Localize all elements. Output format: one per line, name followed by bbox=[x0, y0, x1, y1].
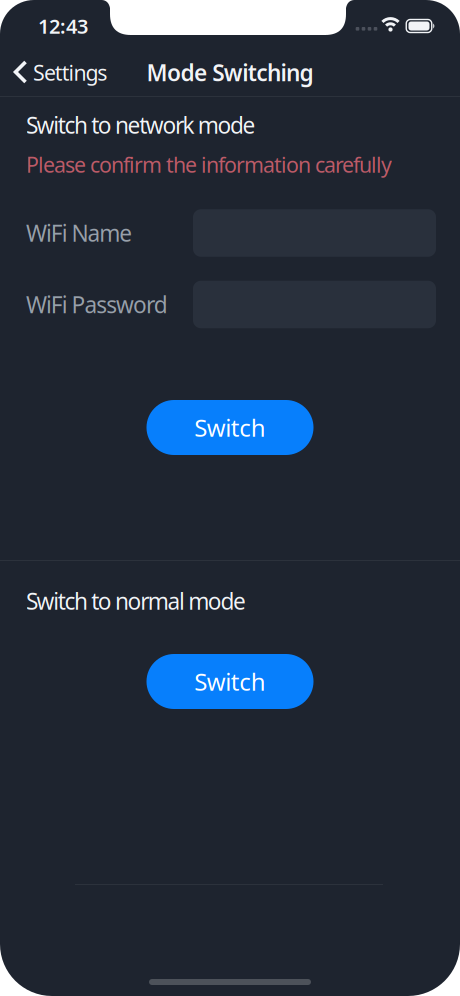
staticText: Switch bbox=[194, 666, 266, 697]
button[interactable]: Switch bbox=[146, 400, 313, 455]
button[interactable]: Switch bbox=[146, 654, 313, 709]
staticText: 12:43 bbox=[38, 13, 88, 39]
staticText: Switch to network mode bbox=[26, 110, 256, 140]
staticText: Switch to normal mode bbox=[26, 586, 246, 616]
staticText: Switch bbox=[194, 412, 266, 443]
staticText: Please confirm the information carefully bbox=[26, 150, 392, 179]
staticText: WiFi Password bbox=[26, 289, 168, 319]
button[interactable]: Back bbox=[0, 58, 107, 87]
staticText: Settings bbox=[33, 58, 107, 87]
staticText: WiFi Name bbox=[26, 218, 132, 248]
staticText: Mode Switching bbox=[146, 57, 313, 87]
